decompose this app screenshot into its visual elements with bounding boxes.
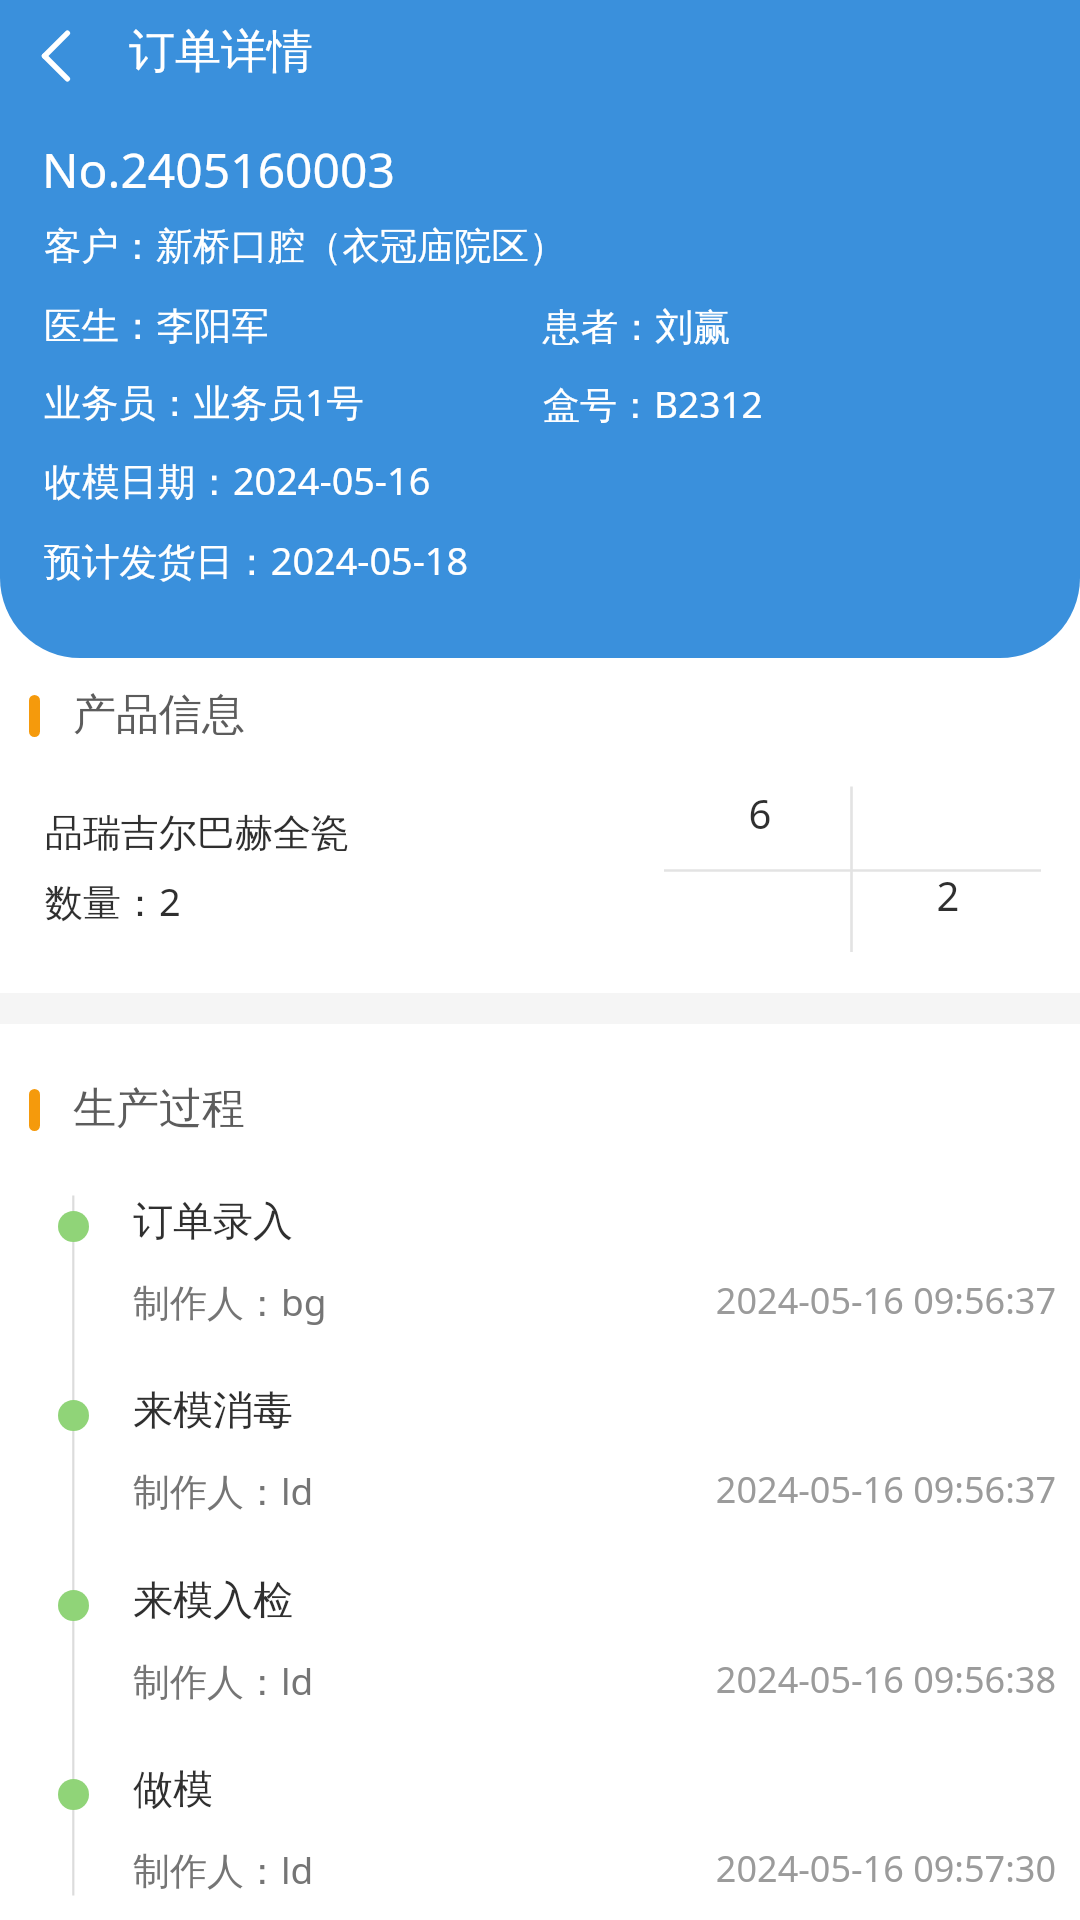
staticText: 2 (928, 868, 968, 922)
staticText: 订单详情 (129, 23, 313, 81)
button[interactable]: 品瑞吉尔巴赫全瓷 (0, 760, 1080, 990)
staticText: 2024-05-16 09:56:37 (600, 1276, 1056, 1325)
staticText: 做模 (133, 1764, 213, 1814)
button[interactable]: Back (2, 1, 112, 111)
staticText: 数量：2 (45, 875, 181, 927)
staticText: 制作人：ld (133, 1844, 314, 1895)
staticText: 来模消毒 (133, 1385, 293, 1435)
staticText: 医生：李阳军 (44, 303, 269, 350)
staticText: 2024-05-16 09:56:38 (600, 1655, 1056, 1704)
staticText: 品瑞吉尔巴赫全瓷 (45, 809, 349, 857)
button[interactable]: 订单录入 (0, 1179, 1080, 1368)
staticText: 2024-05-16 09:56:37 (600, 1465, 1056, 1514)
staticText: 预计发货日：2024-05-18 (44, 535, 469, 587)
button[interactable]: 来模消毒 (0, 1368, 1080, 1557)
staticText: 生产过程 (73, 1082, 245, 1136)
staticText: No.2405160003 (42, 137, 395, 202)
staticText: 制作人：ld (133, 1655, 314, 1706)
staticText: 6 (740, 786, 780, 840)
staticText: 2024-05-16 09:57:30 (600, 1844, 1056, 1893)
staticText: 客户：新桥口腔（衣冠庙院区） (44, 223, 567, 270)
staticText: 来模入检 (133, 1575, 293, 1625)
staticText: 制作人：bg (133, 1276, 327, 1327)
staticText: 产品信息 (73, 688, 245, 742)
button[interactable]: 做模 (0, 1747, 1080, 1920)
staticText: 患者：刘赢 (543, 304, 731, 351)
staticText: 订单录入 (133, 1196, 293, 1246)
staticText: 盒号：B2312 (543, 378, 763, 429)
staticText: 制作人：ld (133, 1465, 314, 1516)
staticText: 收模日期：2024-05-16 (44, 455, 431, 507)
button[interactable]: 来模入检 (0, 1558, 1080, 1747)
staticText: 业务员：业务员1号 (44, 376, 364, 427)
